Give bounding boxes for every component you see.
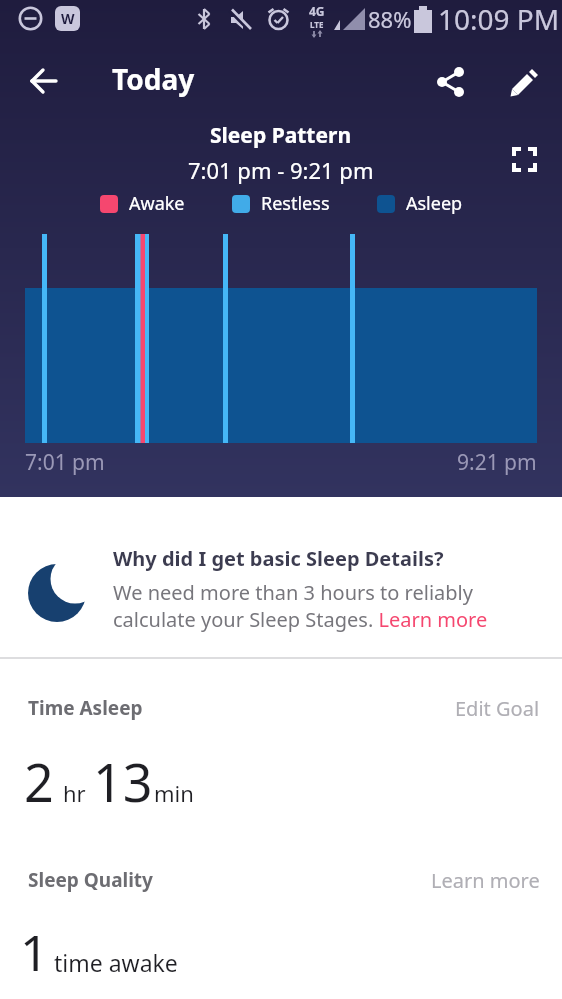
button[interactable]: Learn more	[431, 867, 540, 894]
staticText: hr	[63, 778, 86, 808]
button[interactable]: Why did I get basic Sleep Details?	[28, 545, 537, 633]
staticText: 88%	[368, 4, 412, 34]
staticText: Awake	[129, 191, 185, 216]
button[interactable]	[30, 67, 58, 95]
staticText: 7:01 pm - 9:21 pm	[188, 155, 374, 185]
staticText: Restless	[261, 191, 330, 216]
staticText: 4G	[309, 3, 325, 19]
button[interactable]	[433, 65, 465, 97]
staticText: Why did I get basic Sleep Details?	[113, 545, 444, 572]
staticText: W	[61, 9, 75, 28]
button[interactable]	[512, 147, 537, 172]
staticText: 1	[20, 918, 49, 986]
staticText: Today	[112, 60, 195, 98]
staticText: Sleep Pattern	[210, 121, 352, 150]
staticText: Asleep	[406, 191, 463, 216]
staticText: min	[154, 778, 194, 808]
staticText: 2	[24, 746, 54, 817]
staticText: Time Asleep	[28, 695, 143, 721]
staticText: time awake	[54, 947, 178, 978]
staticText: 10:09 PM	[438, 0, 560, 38]
staticText: 9:21 pm	[457, 448, 537, 477]
staticText: 13	[93, 746, 153, 817]
button[interactable]	[508, 65, 540, 97]
staticText: Sleep Quality	[28, 867, 153, 893]
staticText: We need more than 3 hours to reliably ca…	[113, 579, 488, 633]
button[interactable]: Edit Goal	[455, 695, 540, 722]
staticText: 7:01 pm	[25, 448, 105, 477]
staticText: LTE	[310, 19, 324, 30]
